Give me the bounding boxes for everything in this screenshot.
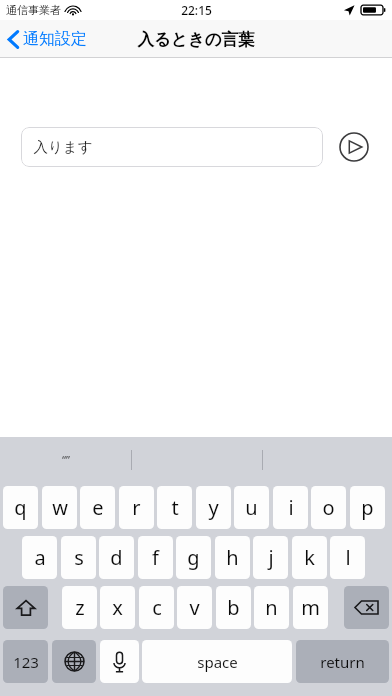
button[interactable]: 通知設定 xyxy=(0,25,97,53)
button[interactable]: u xyxy=(234,486,269,529)
button[interactable]: b xyxy=(216,586,251,629)
staticText: k xyxy=(304,544,315,571)
button[interactable]: h xyxy=(215,536,250,579)
staticText: 通知設定 xyxy=(23,29,87,49)
button[interactable]: p xyxy=(350,486,385,529)
button[interactable]: Shift xyxy=(3,586,48,629)
button[interactable]: Play xyxy=(336,129,372,165)
staticText: “” xyxy=(62,452,70,467)
button[interactable]: j xyxy=(253,536,288,579)
button[interactable]: 入ります xyxy=(21,127,323,167)
staticText: y xyxy=(208,494,219,521)
button[interactable]: r xyxy=(119,486,154,529)
button[interactable]: k xyxy=(292,536,327,579)
button[interactable]: space xyxy=(142,640,292,683)
button[interactable]: 123 xyxy=(3,640,48,683)
staticText: l xyxy=(345,544,351,571)
staticText: e xyxy=(92,494,104,521)
button[interactable]: c xyxy=(139,586,174,629)
staticText: 入るときの言葉 xyxy=(137,29,255,50)
staticText: 123 xyxy=(13,652,39,672)
staticText: b xyxy=(227,594,240,621)
staticText: j xyxy=(268,544,274,571)
staticText: return xyxy=(320,652,365,672)
staticText: v xyxy=(189,594,200,621)
staticText: w xyxy=(52,494,68,521)
staticText: c xyxy=(152,594,162,621)
staticText: g xyxy=(187,544,200,571)
button[interactable]: v xyxy=(177,586,212,629)
staticText: t xyxy=(171,494,179,521)
staticText: m xyxy=(301,594,320,621)
staticText: x xyxy=(112,594,123,621)
button[interactable]: a xyxy=(22,536,57,579)
button[interactable]: d xyxy=(99,536,134,579)
button[interactable]: Backspace xyxy=(344,586,389,629)
staticText: o xyxy=(322,494,335,521)
button[interactable]: i xyxy=(273,486,308,529)
staticText: n xyxy=(265,594,278,621)
staticText: 入ります xyxy=(33,138,93,156)
button[interactable]: g xyxy=(176,536,211,579)
staticText: 通信事業者 xyxy=(6,3,61,17)
button[interactable]: o xyxy=(311,486,346,529)
staticText: p xyxy=(361,494,374,521)
staticText: d xyxy=(110,544,123,571)
button[interactable]: “” xyxy=(0,437,131,481)
staticText: f xyxy=(152,544,159,571)
button[interactable]: return xyxy=(296,640,389,683)
button[interactable]: e xyxy=(80,486,115,529)
button[interactable]: m xyxy=(293,586,328,629)
staticText: h xyxy=(226,544,239,571)
button[interactable]: x xyxy=(100,586,135,629)
staticText: q xyxy=(14,494,27,521)
staticText: a xyxy=(34,544,46,571)
button[interactable]: t xyxy=(157,486,192,529)
staticText: u xyxy=(245,494,258,521)
staticText: i xyxy=(288,494,294,521)
staticText: z xyxy=(75,594,85,621)
staticText: 22:15 xyxy=(181,2,212,18)
button[interactable]: q xyxy=(3,486,38,529)
staticText: space xyxy=(197,652,238,672)
button[interactable]: y xyxy=(196,486,231,529)
button[interactable]: n xyxy=(254,586,289,629)
button[interactable]: Dictation xyxy=(100,640,139,683)
button[interactable]: f xyxy=(138,536,173,579)
staticText: r xyxy=(132,494,141,521)
button[interactable]: Change keyboard xyxy=(52,640,96,683)
button[interactable]: s xyxy=(61,536,96,579)
button[interactable]: z xyxy=(62,586,97,629)
staticText: s xyxy=(74,544,84,571)
button[interactable]: l xyxy=(330,536,365,579)
button[interactable]: w xyxy=(42,486,77,529)
